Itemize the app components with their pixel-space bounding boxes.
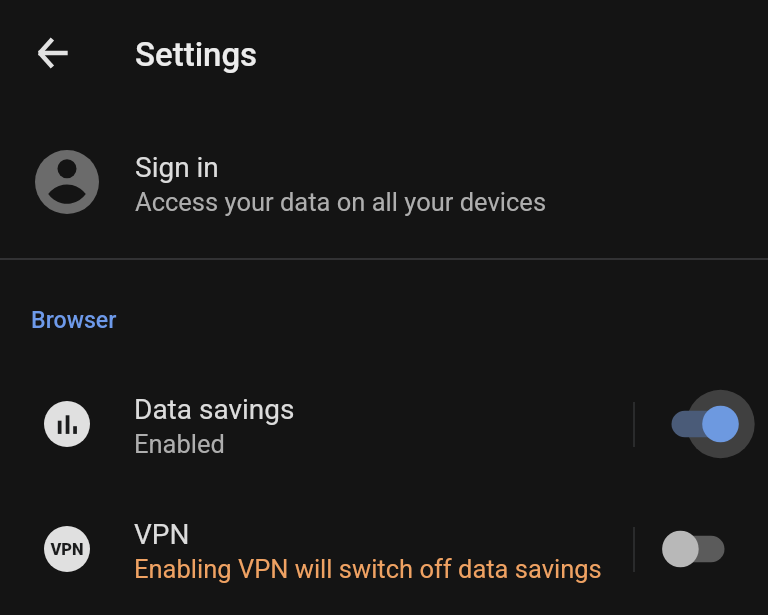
button[interactable]: Turn off Data savings bbox=[636, 362, 768, 486]
staticText: VPN bbox=[134, 518, 190, 551]
button[interactable]: Turn on VPN bbox=[636, 487, 768, 611]
staticText: Settings bbox=[135, 35, 258, 74]
button[interactable]: Back bbox=[21, 21, 85, 85]
staticText: VPN bbox=[50, 540, 84, 559]
staticText: Enabled bbox=[134, 429, 225, 459]
staticText: Browser bbox=[31, 306, 117, 333]
button[interactable]: Data savings bbox=[0, 362, 768, 486]
staticText: Enabling VPN will switch off data saving… bbox=[134, 554, 602, 584]
staticText: Data savings bbox=[134, 393, 295, 426]
button[interactable]: Sign in bbox=[0, 121, 768, 243]
button[interactable]: VPN bbox=[0, 487, 768, 611]
staticText: Sign in bbox=[135, 151, 219, 184]
staticText: Access your data on all your devices bbox=[135, 187, 547, 217]
